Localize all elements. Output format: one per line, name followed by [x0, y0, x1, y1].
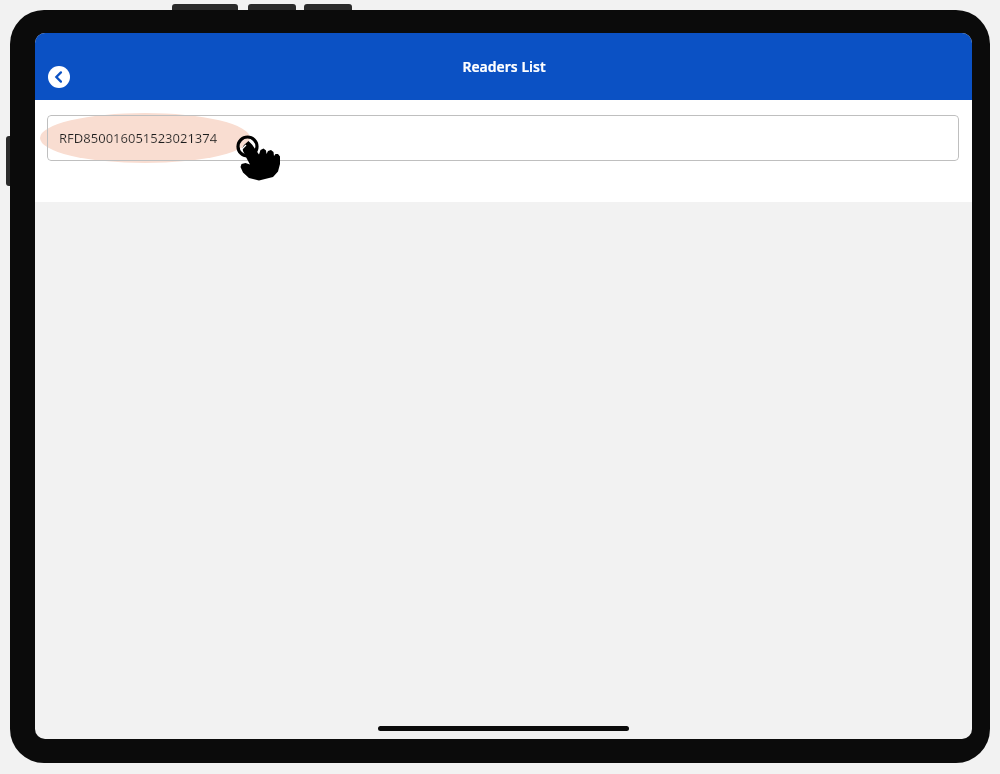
staticText: RFD850016051523021374: [59, 129, 218, 147]
button[interactable]: RFD850016051523021374: [47, 115, 959, 161]
button[interactable]: Back: [48, 66, 70, 88]
staticText: Readers List: [462, 57, 546, 76]
